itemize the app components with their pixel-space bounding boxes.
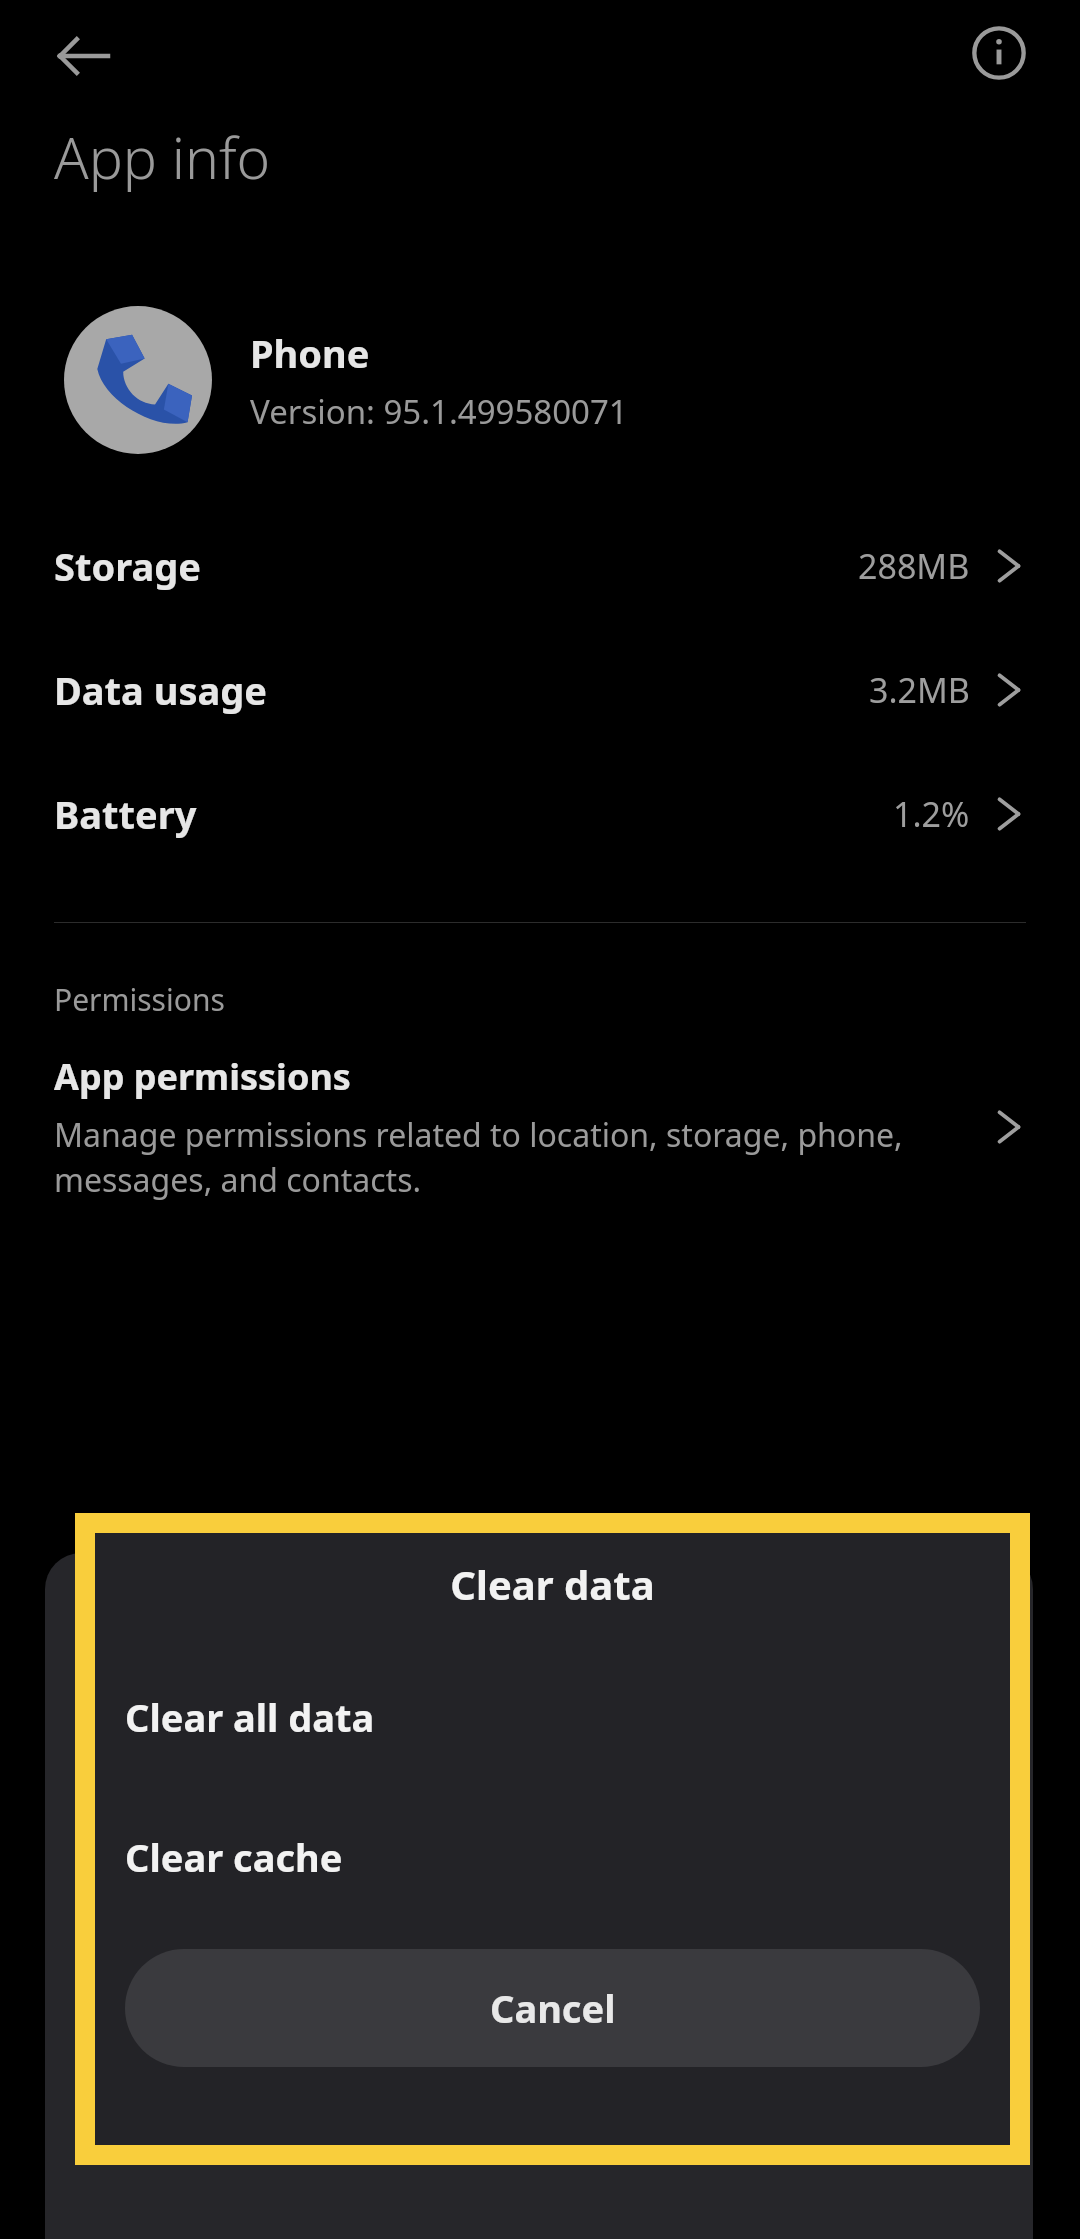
button[interactable]: Info <box>970 24 1028 82</box>
button[interactable]: Clear cache <box>95 1823 1010 1891</box>
staticText: Clear data <box>95 1557 1010 1611</box>
staticText: Battery <box>54 788 197 840</box>
staticText: Manage permissions related to location, … <box>54 1113 976 1201</box>
staticText: Clear all data <box>125 1691 375 1743</box>
button[interactable]: Data usage <box>0 664 1080 716</box>
button[interactable]: App permissions <box>0 1052 1080 1201</box>
button[interactable]: Storage <box>0 540 1080 592</box>
staticText: 288MB <box>858 543 970 589</box>
staticText: App info <box>54 118 271 196</box>
staticText: Permissions <box>54 979 225 1020</box>
button[interactable]: Battery <box>0 788 1080 840</box>
staticText: 3.2MB <box>869 667 970 713</box>
staticText: Version: 95.1.499580071 <box>250 389 628 434</box>
staticText: Clear cache <box>125 1831 343 1883</box>
button[interactable]: Clear all data <box>95 1683 1010 1751</box>
staticText: Data usage <box>54 664 267 716</box>
staticText: Storage <box>54 540 201 592</box>
staticText: App permissions <box>54 1052 351 1101</box>
staticText: Cancel <box>490 1982 616 2034</box>
button[interactable]: Cancel <box>125 1949 980 2067</box>
button[interactable]: Back <box>54 26 114 86</box>
staticText: 1.2% <box>893 791 970 837</box>
staticText: Phone <box>250 327 370 379</box>
